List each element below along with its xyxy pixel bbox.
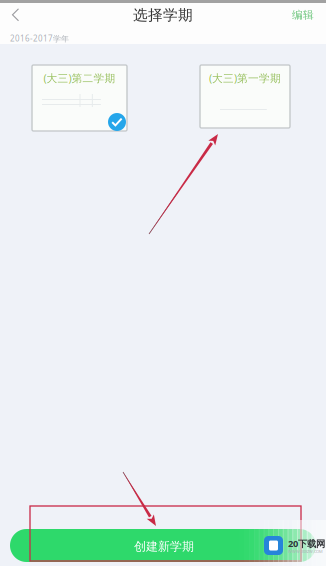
button[interactable]: Back	[6, 7, 26, 23]
button[interactable]: 创建新学期	[10, 529, 316, 562]
staticText: 选择学期	[133, 6, 193, 24]
button[interactable]: 编辑	[286, 7, 320, 23]
staticText: 创建新学期	[134, 539, 194, 554]
staticText: 20下载网	[288, 537, 325, 550]
button[interactable]: (大三)第二学期	[32, 65, 127, 131]
staticText: 2016-2017学年	[10, 33, 69, 44]
staticText: (大三)第一学期	[209, 71, 281, 85]
button[interactable]: (大三)第一学期	[200, 65, 290, 128]
staticText: (大三)第二学期	[43, 71, 115, 85]
staticText: 编辑	[292, 8, 314, 21]
staticText: WWW.20XZW.COM	[288, 549, 323, 554]
